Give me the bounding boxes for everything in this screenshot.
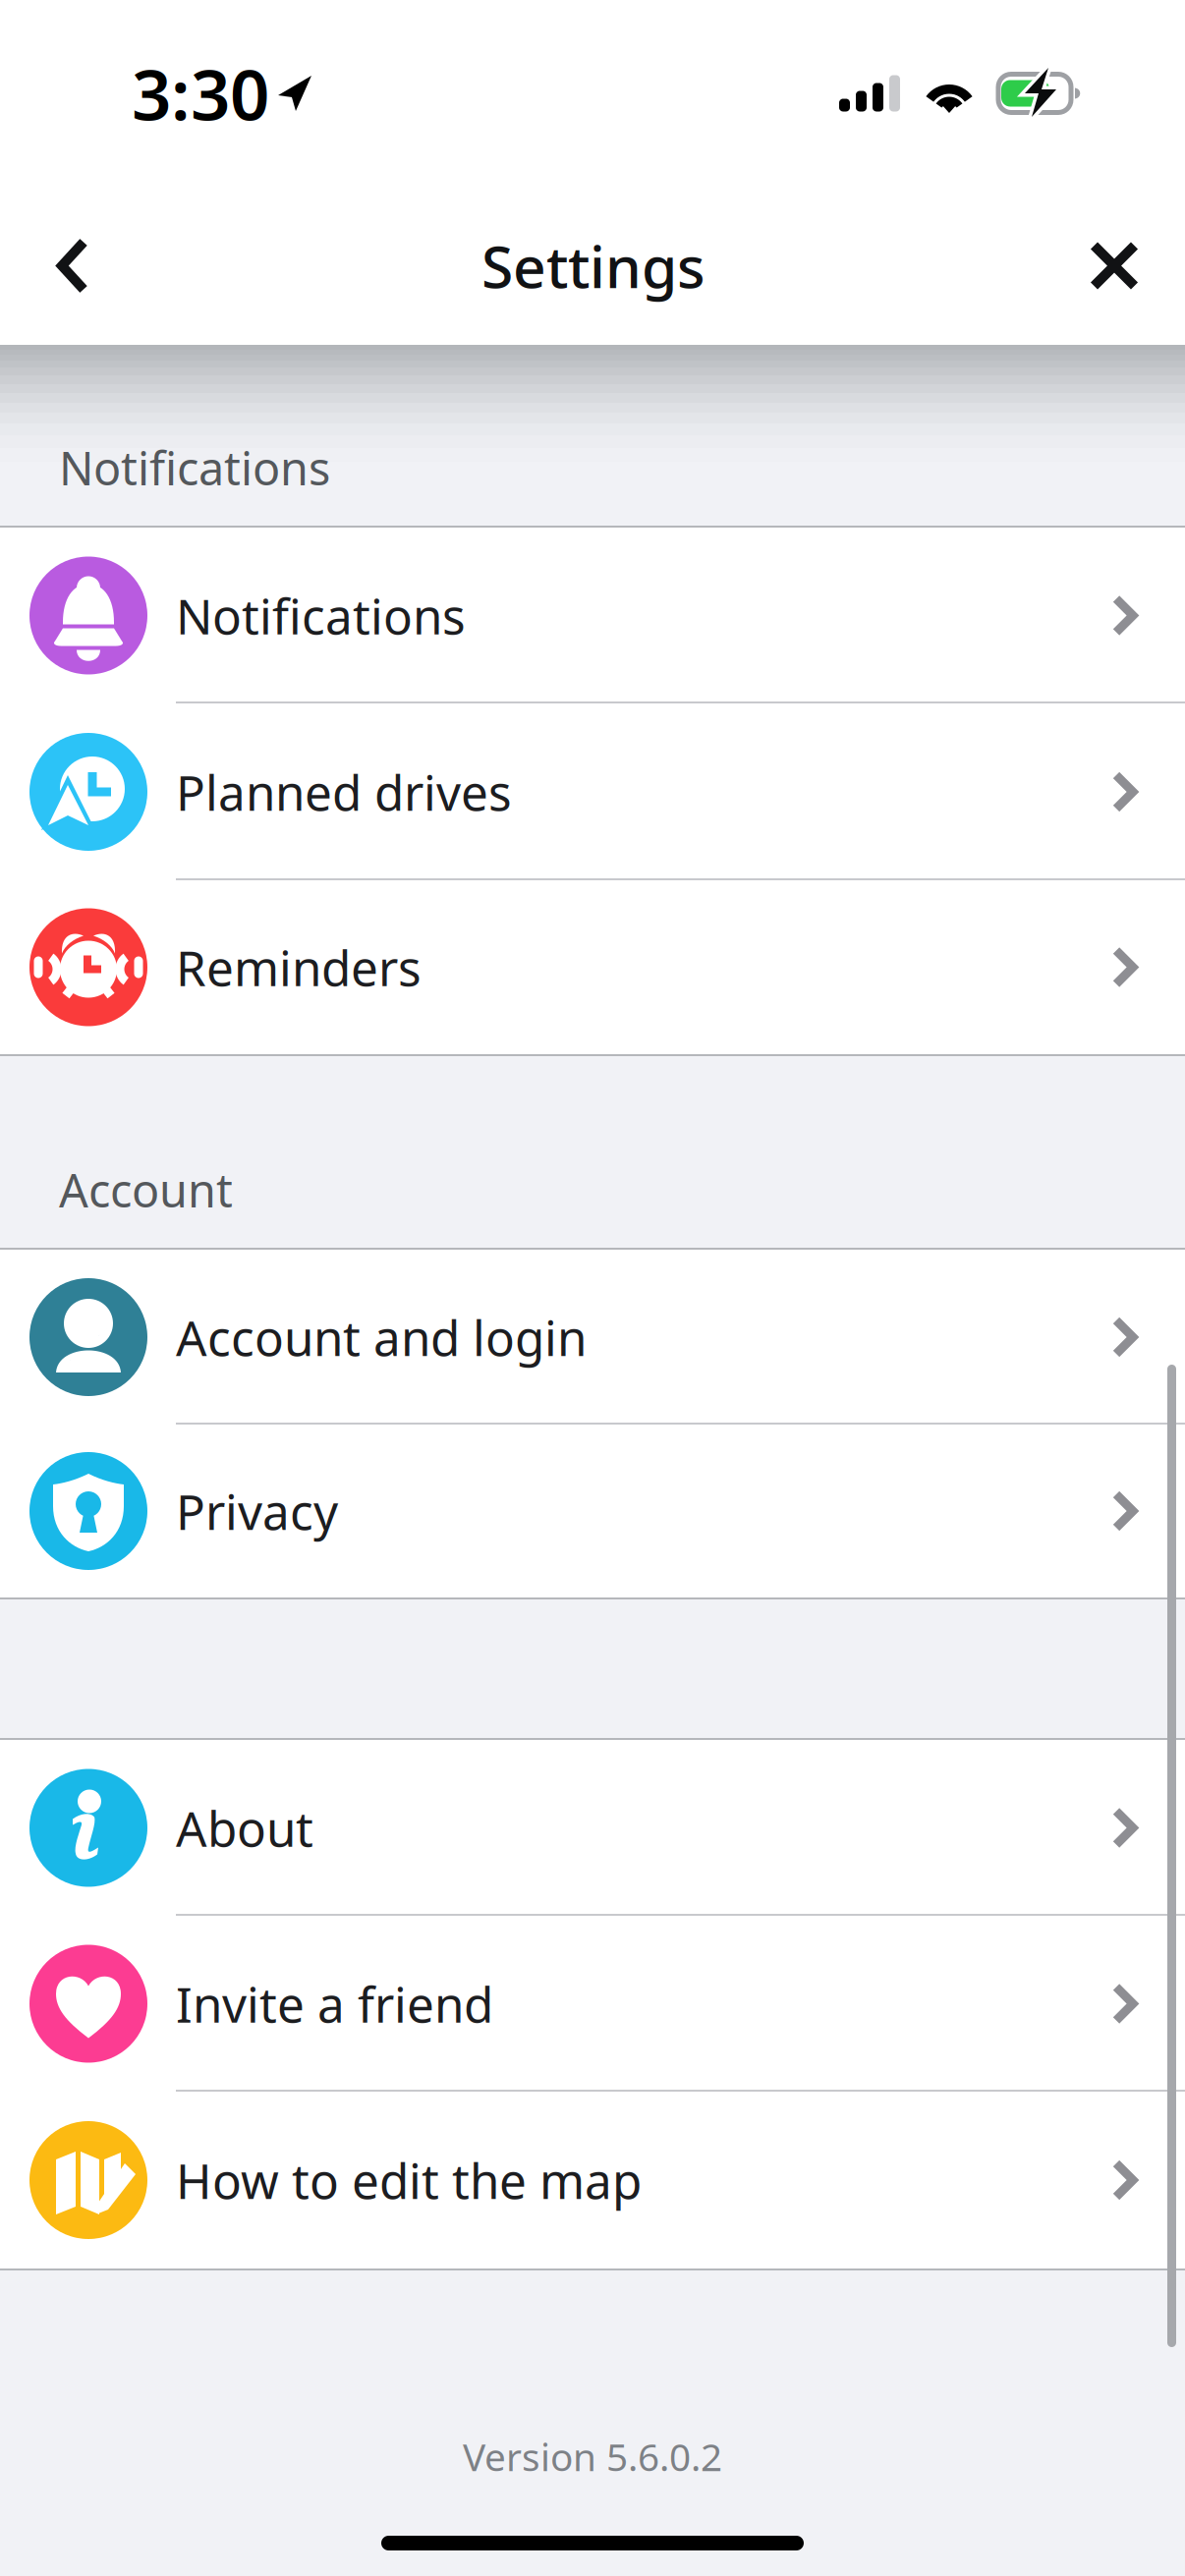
staticText: 3:30 <box>132 47 269 139</box>
button[interactable]: Notifications <box>0 528 1185 703</box>
staticText: Account <box>59 1159 233 1220</box>
button[interactable]: About <box>0 1740 1185 1916</box>
button[interactable]: Planned drives <box>0 703 1185 880</box>
button[interactable]: Close <box>1065 197 1163 335</box>
staticText: Reminders <box>176 935 422 999</box>
button[interactable]: Reminders <box>0 880 1185 1054</box>
staticText: Settings <box>481 227 705 304</box>
button[interactable]: Invite a friend <box>0 1916 1185 2092</box>
staticText: Privacy <box>176 1479 338 1543</box>
button[interactable]: Account and login <box>0 1250 1185 1425</box>
staticText: Version 5.6.0.2 <box>463 2431 722 2482</box>
staticText: Notifications <box>59 437 330 498</box>
staticText: Account and login <box>176 1305 587 1369</box>
button[interactable]: How to edit the map <box>0 2092 1185 2268</box>
button[interactable]: Back <box>24 197 122 335</box>
staticText: Notifications <box>176 583 466 648</box>
staticText: About <box>176 1796 313 1860</box>
staticText: How to edit the map <box>176 2148 642 2212</box>
staticText: Planned drives <box>176 760 512 824</box>
button[interactable]: Privacy <box>0 1425 1185 1597</box>
staticText: Invite a friend <box>176 1971 493 2036</box>
